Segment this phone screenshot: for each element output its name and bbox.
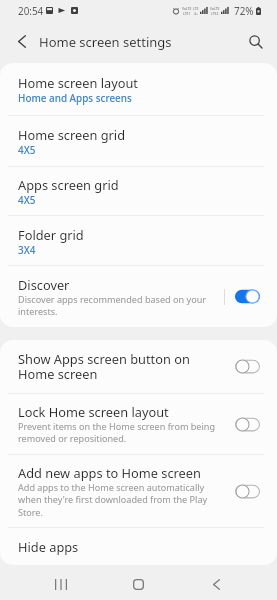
staticText: 4X5 [18,193,36,206]
staticText: 20:54 [18,4,44,17]
staticText: LTE2 [211,11,219,16]
button[interactable]: Discover [0,266,277,327]
staticText: 4+ [194,11,198,16]
staticText: LTE1 [183,11,191,16]
staticText: Lock Home screen layout [18,403,169,420]
staticText: LTE [193,6,199,11]
staticText: VoLTE [182,6,192,11]
staticText: 4X5 [18,143,36,156]
button[interactable]: Show Apps screen button on Home screen [0,340,277,393]
button[interactable]: Recent apps [48,571,74,597]
staticText: Add apps to the Home screen automaticall… [18,481,223,519]
button[interactable]: Home screen layout [0,63,277,115]
staticText: 72% [234,4,254,17]
button[interactable]: Lock Home screen layout [0,394,277,454]
button[interactable]: Folder grid [0,216,277,265]
button[interactable]: Toggle, off [235,484,260,499]
staticText: Show Apps screen button on Home screen [18,350,223,383]
staticText: Folder grid [18,226,84,243]
button[interactable]: Back [9,29,34,54]
button[interactable]: Toggle, off [235,359,260,374]
button[interactable]: Apps screen grid [0,167,277,215]
staticText: Hide apps [18,538,79,555]
button[interactable]: Home screen grid [0,116,277,166]
staticText: Home screen settings [39,33,172,51]
staticText: Home and Apps screens [18,91,132,104]
staticText: Prevent items on the Home screen from be… [18,420,223,445]
button[interactable]: Toggle, off [235,417,260,432]
staticText: Discover apps recommended based on your … [18,293,218,318]
staticText: Apps screen grid [18,176,119,193]
staticText: Add new apps to Home screen [18,464,201,481]
button[interactable]: Add new apps to Home screen [0,455,277,527]
button[interactable]: Discover toggle, on [235,289,260,304]
staticText: Home screen layout [18,74,138,91]
staticText: Discover [18,276,70,293]
button[interactable]: Search [243,29,269,55]
staticText: 3X4 [18,243,36,256]
staticText: Home screen grid [18,126,126,143]
button[interactable]: Home [125,571,151,597]
button[interactable]: Back [203,571,229,597]
button[interactable]: Hide apps [0,528,277,565]
staticText: VoLTE [210,6,220,11]
